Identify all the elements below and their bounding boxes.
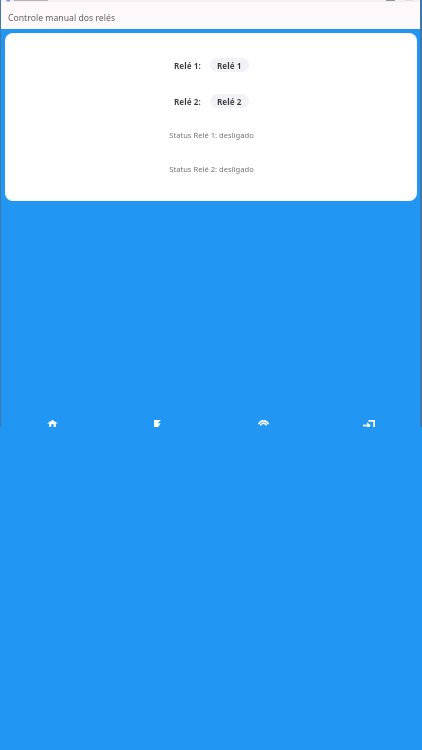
staticText: Relé 1 [217, 60, 242, 71]
staticText: Status Relé 1: desligado [169, 130, 254, 140]
staticText: Status Relé 2: desligado [169, 164, 254, 174]
button[interactable]: Wi-Fi [210, 411, 316, 427]
staticText: Relé 2: [174, 96, 201, 107]
button[interactable]: Home [0, 411, 105, 427]
staticText: Controle manual dos relés [8, 12, 116, 24]
button[interactable]: Relé 1 [210, 58, 249, 72]
staticText: Relé 1: [174, 60, 201, 71]
button[interactable]: Relé 2 [210, 94, 249, 108]
button[interactable]: Logout [316, 411, 422, 427]
button[interactable]: Power [105, 411, 210, 427]
staticText: Relé 2 [217, 96, 242, 107]
